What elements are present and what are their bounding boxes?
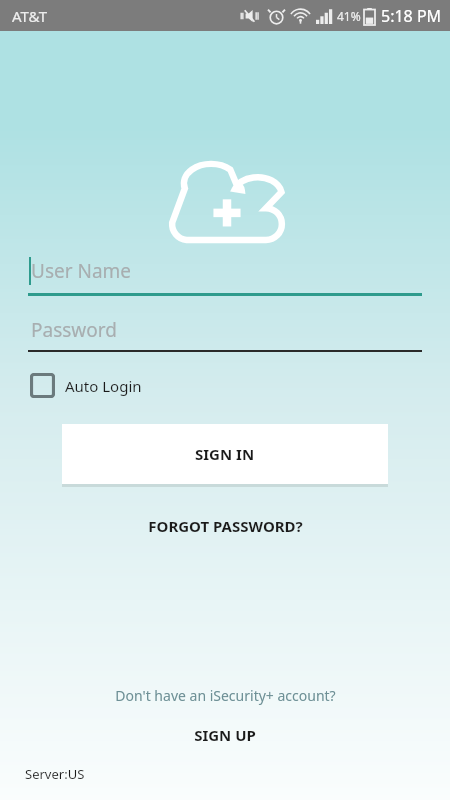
staticText: Password: [31, 317, 117, 343]
staticText: Auto Login: [65, 376, 142, 396]
staticText: 41%: [337, 8, 361, 24]
button[interactable]: SIGN UP: [0, 720, 450, 750]
other: iSecurity+ logo: [168, 160, 286, 246]
staticText: User Name: [31, 258, 132, 284]
staticText: SIGN IN: [195, 444, 255, 464]
button[interactable]: Password: [28, 311, 422, 352]
staticText: Server:US: [25, 765, 85, 783]
staticText: Don't have an iSecurity+ account?: [115, 686, 336, 705]
button[interactable]: FORGOT PASSWORD?: [0, 511, 450, 541]
staticText: FORGOT PASSWORD?: [148, 516, 303, 536]
staticText: AT&T: [12, 6, 47, 26]
staticText: SIGN UP: [194, 725, 256, 745]
button[interactable]: Auto Login: [30, 369, 142, 402]
button[interactable]: User Name: [28, 252, 422, 296]
staticText: 5:18 PM: [381, 5, 442, 27]
button[interactable]: SIGN IN: [62, 424, 388, 484]
